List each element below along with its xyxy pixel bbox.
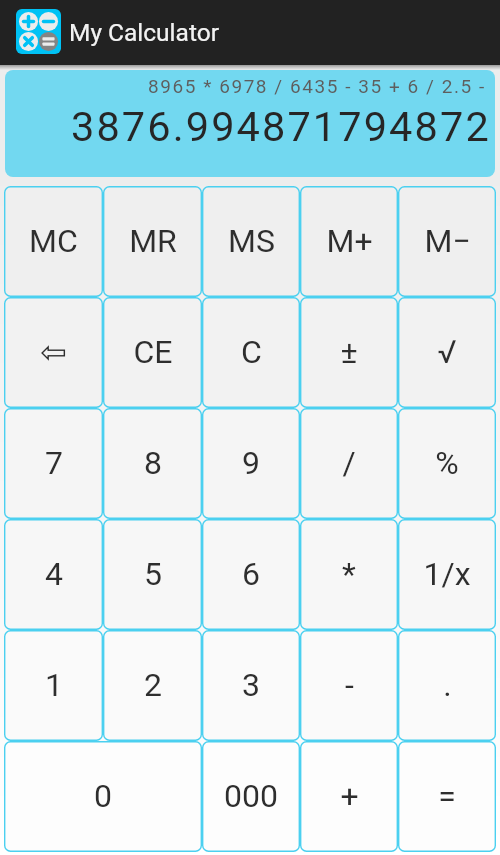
staticText: 8965 * 6978 / 6435 - 35 + 6 / 2.5 - bbox=[148, 75, 486, 97]
staticText: 9 bbox=[242, 444, 260, 482]
staticText: - bbox=[345, 666, 354, 704]
staticText: 0 bbox=[94, 777, 112, 815]
button[interactable]: M+ bbox=[300, 186, 398, 297]
button[interactable]: 1/x bbox=[398, 519, 496, 630]
button[interactable]: 9 bbox=[202, 408, 300, 519]
button[interactable]: 2 bbox=[103, 630, 202, 741]
button[interactable]: ⇦ bbox=[4, 297, 103, 408]
staticText: My Calculator bbox=[69, 18, 219, 47]
button[interactable]: MR bbox=[103, 186, 202, 297]
staticText: √ bbox=[437, 333, 457, 371]
button[interactable]: 000 bbox=[202, 741, 300, 852]
staticText: + bbox=[340, 777, 359, 815]
staticText: 5 bbox=[144, 555, 162, 593]
staticText: . bbox=[443, 666, 452, 704]
button[interactable]: 8 bbox=[103, 408, 202, 519]
button[interactable]: M− bbox=[398, 186, 496, 297]
staticText: 1/x bbox=[423, 555, 471, 593]
button[interactable]: 1 bbox=[4, 630, 103, 741]
staticText: 4 bbox=[45, 555, 63, 593]
button[interactable]: + bbox=[300, 741, 398, 852]
staticText: C bbox=[241, 333, 262, 371]
button[interactable]: MC bbox=[4, 186, 103, 297]
staticText: 7 bbox=[45, 444, 63, 482]
staticText: = bbox=[438, 777, 456, 815]
button[interactable]: C bbox=[202, 297, 300, 408]
button[interactable]: ± bbox=[300, 297, 398, 408]
staticText: 6 bbox=[242, 555, 260, 593]
button[interactable]: - bbox=[300, 630, 398, 741]
button[interactable]: 5 bbox=[103, 519, 202, 630]
staticText: / bbox=[342, 444, 356, 482]
button[interactable]: My Calculator app icon bbox=[16, 9, 61, 54]
staticText: M− bbox=[424, 222, 471, 260]
button[interactable]: Calculator display bbox=[5, 70, 495, 177]
staticText: MR bbox=[129, 222, 177, 260]
button[interactable]: % bbox=[398, 408, 496, 519]
staticText: MC bbox=[29, 222, 78, 260]
button[interactable]: CE bbox=[103, 297, 202, 408]
button[interactable]: . bbox=[398, 630, 496, 741]
staticText: * bbox=[342, 555, 356, 593]
staticText: 1 bbox=[45, 666, 63, 704]
staticText: % bbox=[435, 444, 459, 482]
staticText: CE bbox=[133, 333, 173, 371]
button[interactable]: √ bbox=[398, 297, 496, 408]
button[interactable]: 4 bbox=[4, 519, 103, 630]
staticText: ⇦ bbox=[40, 333, 67, 370]
button[interactable]: / bbox=[300, 408, 398, 519]
staticText: 2 bbox=[144, 666, 162, 704]
staticText: 3876.994871794872 bbox=[71, 102, 491, 151]
staticText: 3 bbox=[242, 666, 260, 704]
staticText: ± bbox=[340, 333, 358, 371]
staticText: MS bbox=[228, 222, 275, 260]
button[interactable]: * bbox=[300, 519, 398, 630]
button[interactable]: 0 bbox=[4, 741, 202, 852]
staticText: 8 bbox=[144, 444, 162, 482]
button[interactable]: 7 bbox=[4, 408, 103, 519]
staticText: M+ bbox=[326, 222, 373, 260]
button[interactable]: = bbox=[398, 741, 496, 852]
button[interactable]: MS bbox=[202, 186, 300, 297]
button[interactable]: 3 bbox=[202, 630, 300, 741]
staticText: 000 bbox=[224, 777, 278, 815]
button[interactable]: 6 bbox=[202, 519, 300, 630]
